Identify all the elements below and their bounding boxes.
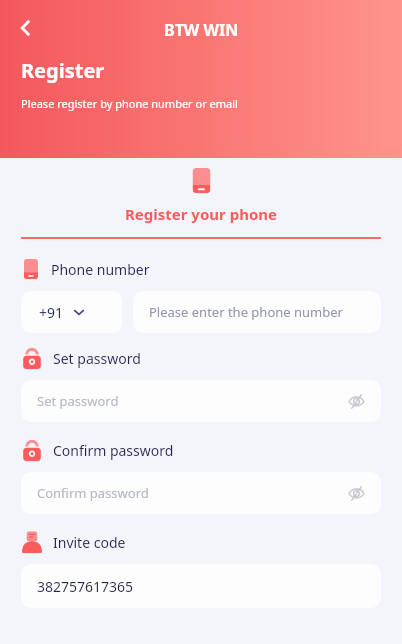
- staticText: Register your phone: [125, 204, 277, 224]
- button[interactable]: Please enter the phone number: [133, 291, 381, 333]
- button[interactable]: Show password: [345, 482, 367, 504]
- staticText: Confirm password: [53, 441, 174, 460]
- button[interactable]: Show password: [345, 390, 367, 412]
- staticText: Register: [21, 57, 105, 84]
- button[interactable]: Back: [6, 8, 46, 48]
- staticText: Please register by phone number or email: [21, 96, 238, 111]
- staticText: Please enter the phone number: [149, 303, 343, 321]
- staticText: BTW WIN: [164, 19, 239, 41]
- button[interactable]: Confirm password: [21, 472, 381, 514]
- button[interactable]: +91: [21, 291, 122, 333]
- staticText: Phone number: [51, 260, 150, 279]
- staticText: Set password: [37, 392, 119, 410]
- staticText: Confirm password: [37, 484, 149, 502]
- button[interactable]: Set password: [21, 380, 381, 422]
- staticText: 382757617365: [37, 577, 134, 596]
- staticText: Set password: [53, 349, 141, 368]
- staticText: Invite code: [53, 533, 126, 552]
- button[interactable]: 382757617365: [21, 564, 381, 608]
- staticText: +91: [39, 303, 64, 322]
